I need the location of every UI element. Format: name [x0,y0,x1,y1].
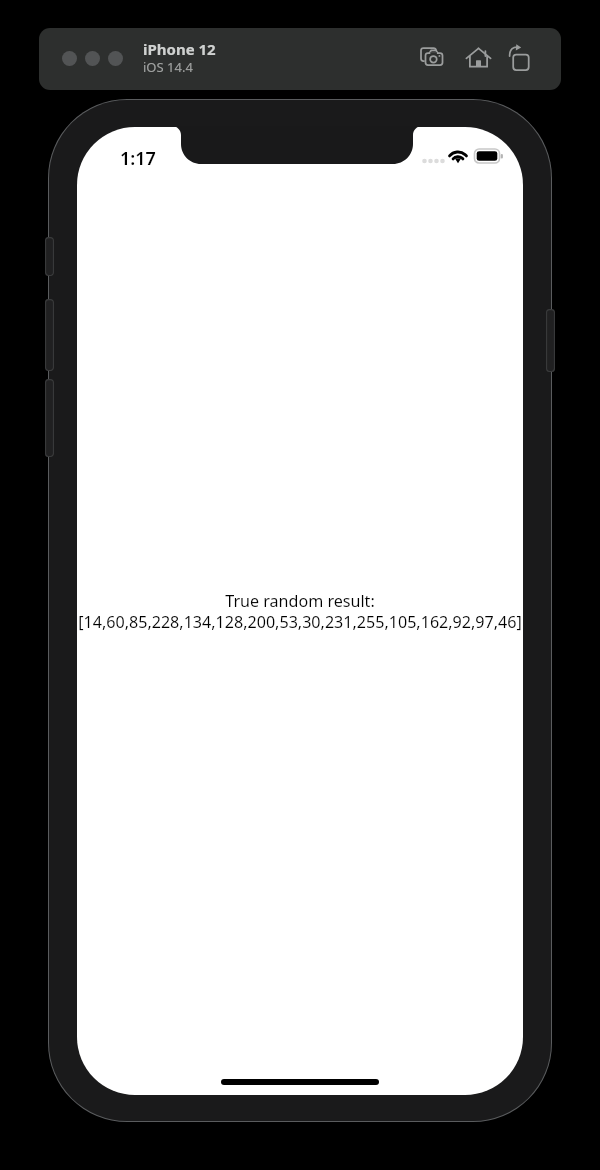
staticText: True random result: [14,60,85,228,134,12… [78,590,522,632]
button[interactable]: Zoom window [108,51,123,66]
staticText: iOS 14.4 [143,58,193,76]
button[interactable]: Minimise window [85,51,100,66]
button[interactable]: Rotate [505,44,537,76]
button[interactable]: Home [463,43,495,75]
staticText: 1:17 [120,146,156,171]
button[interactable]: Screenshot [417,42,449,74]
staticText: iPhone 12 [143,39,216,59]
button[interactable]: Close window [62,51,77,66]
